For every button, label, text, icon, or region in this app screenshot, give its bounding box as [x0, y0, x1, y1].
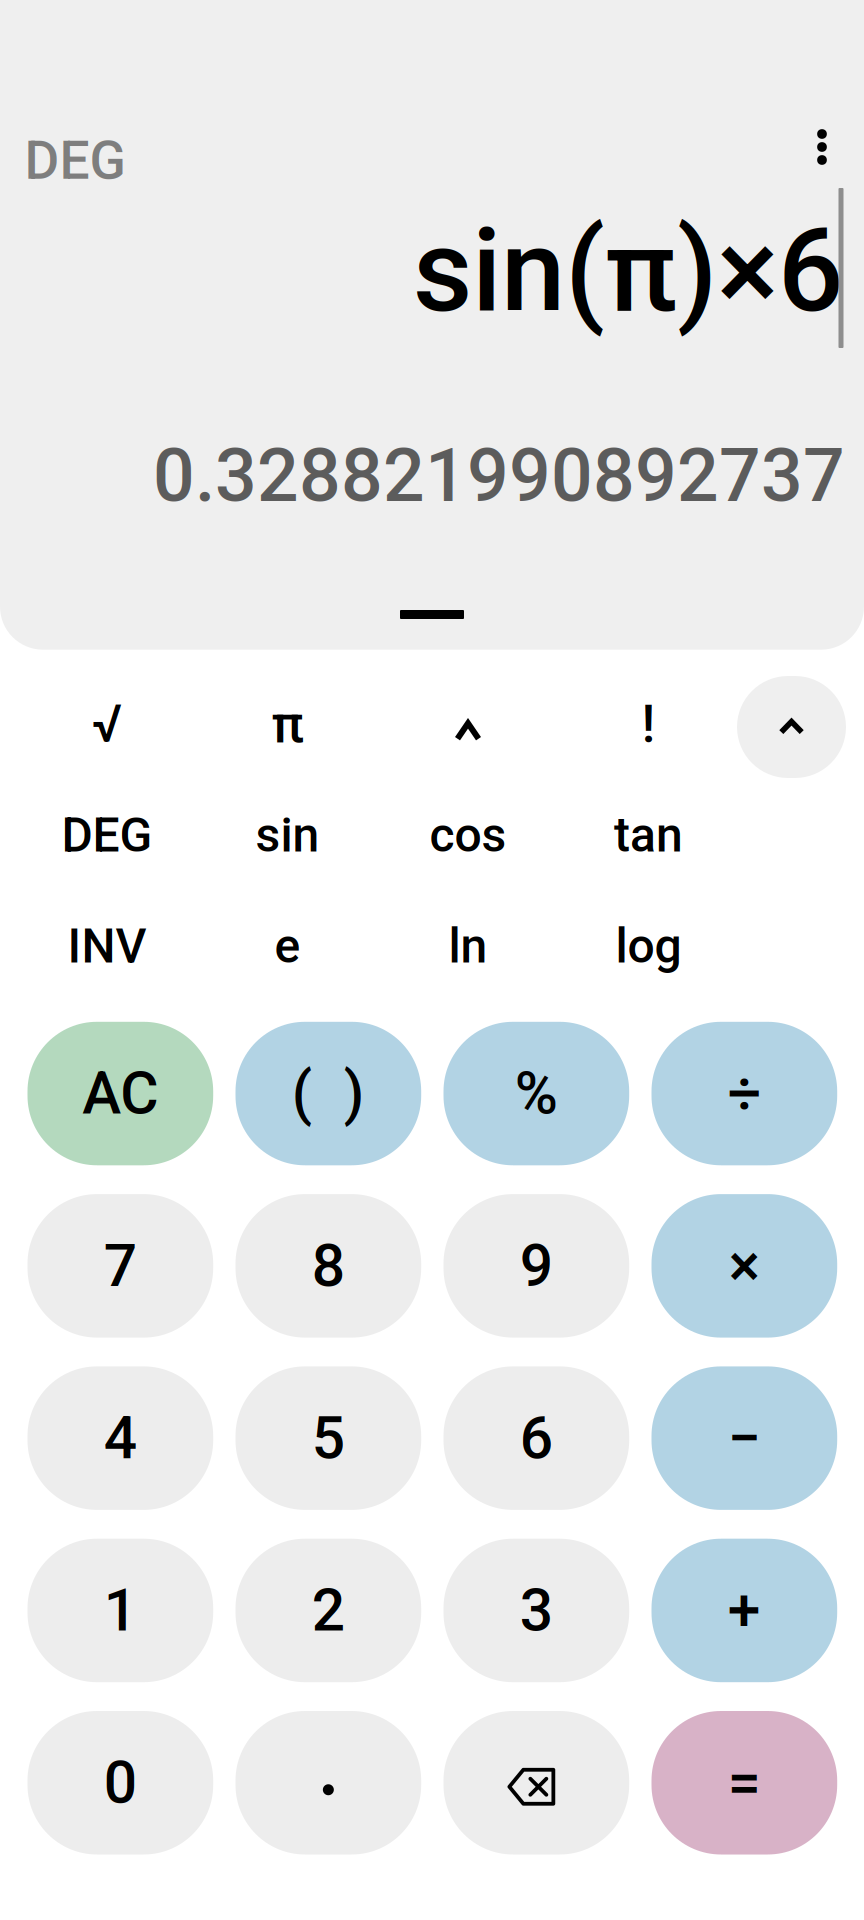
staticText: %: [515, 1059, 558, 1128]
staticText: 0.328821990892737: [153, 433, 845, 519]
staticText: DEG: [24, 129, 125, 192]
button[interactable]: More options: [794, 121, 850, 173]
staticText: 6: [520, 1404, 553, 1473]
staticText: log: [615, 918, 681, 974]
button[interactable]: 3: [443, 1539, 629, 1682]
staticText: !: [641, 693, 655, 754]
button[interactable]: %: [443, 1022, 629, 1165]
button[interactable]: 7: [27, 1194, 213, 1338]
button[interactable]: e: [197, 890, 378, 1001]
staticText: +: [728, 1576, 761, 1645]
button[interactable]: 6: [443, 1366, 629, 1510]
staticText: ÷: [728, 1059, 761, 1128]
staticText: e: [274, 918, 300, 974]
button[interactable]: AC: [27, 1022, 213, 1165]
staticText: 8: [312, 1231, 345, 1300]
staticText: 5: [312, 1404, 345, 1473]
button[interactable]: 0: [27, 1711, 213, 1854]
button[interactable]: Decimal point: [235, 1711, 421, 1854]
button[interactable]: Collapse keypad: [737, 676, 846, 778]
staticText: 4: [104, 1404, 137, 1473]
button[interactable]: 2: [235, 1539, 421, 1682]
staticText: π: [271, 693, 303, 754]
staticText: AC: [82, 1059, 158, 1128]
staticText: sin(π)×6: [413, 203, 844, 339]
button[interactable]: √: [17, 668, 197, 779]
staticText: −: [728, 1404, 761, 1473]
staticText: DEG: [61, 807, 152, 863]
button[interactable]: 1: [27, 1539, 213, 1682]
button[interactable]: tan: [558, 779, 739, 890]
button[interactable]: cos: [378, 779, 558, 890]
button[interactable]: 4: [27, 1366, 213, 1510]
staticText: cos: [429, 807, 506, 863]
staticText: 0: [104, 1748, 137, 1817]
staticText: ln: [448, 918, 487, 974]
button[interactable]: 9: [443, 1194, 629, 1338]
button[interactable]: Backspace: [443, 1711, 629, 1854]
staticText: 1: [104, 1576, 137, 1645]
button[interactable]: 8: [235, 1194, 421, 1338]
button[interactable]: ×: [651, 1194, 837, 1338]
staticText: 3: [520, 1576, 553, 1645]
button[interactable]: =: [651, 1711, 837, 1854]
staticText: 2: [312, 1576, 345, 1645]
button[interactable]: Power: [378, 668, 558, 779]
button[interactable]: +: [651, 1539, 837, 1682]
staticText: ×: [729, 1231, 760, 1300]
button[interactable]: (: [235, 1022, 421, 1165]
staticText: INV: [67, 918, 146, 974]
staticText: ): [344, 1059, 365, 1128]
button[interactable]: sin: [197, 779, 378, 890]
staticText: 9: [520, 1231, 553, 1300]
staticText: 7: [104, 1231, 137, 1300]
staticText: √: [92, 693, 122, 754]
button[interactable]: −: [651, 1366, 837, 1510]
staticText: sin: [255, 807, 319, 863]
staticText: =: [728, 1748, 761, 1817]
button[interactable]: π: [197, 668, 378, 779]
button[interactable]: ÷: [651, 1022, 837, 1165]
staticText: (: [292, 1059, 312, 1128]
button[interactable]: !: [558, 668, 739, 779]
button[interactable]: DEG: [17, 779, 197, 890]
button[interactable]: INV: [17, 890, 197, 1001]
button[interactable]: DEG: [24, 134, 154, 186]
button[interactable]: ln: [378, 890, 558, 1001]
button[interactable]: log: [558, 890, 739, 1001]
button[interactable]: 5: [235, 1366, 421, 1510]
staticText: tan: [614, 807, 683, 863]
